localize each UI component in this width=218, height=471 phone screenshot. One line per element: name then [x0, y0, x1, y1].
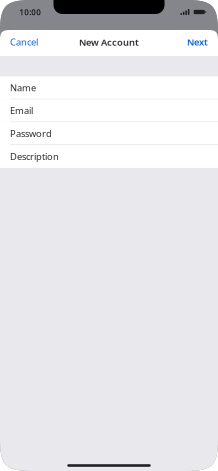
button[interactable]: Next [178, 30, 218, 56]
button[interactable]: Description [0, 145, 218, 168]
staticText: Email [10, 104, 33, 117]
button[interactable]: Cancel [0, 30, 47, 56]
staticText: Description [10, 150, 59, 163]
staticText: Name [10, 81, 36, 94]
staticText: Password [10, 127, 52, 139]
staticText: Cancel [10, 36, 38, 48]
staticText: Next [187, 36, 208, 48]
button[interactable]: Password [0, 122, 218, 145]
button[interactable]: Email [0, 99, 218, 122]
button[interactable]: Name [0, 76, 218, 99]
staticText: New Account [79, 36, 139, 48]
staticText: 10:00 [19, 7, 41, 17]
